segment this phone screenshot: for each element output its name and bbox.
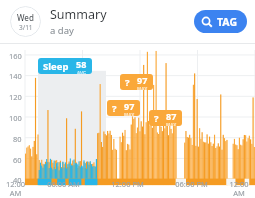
button[interactable]: ? [149, 110, 182, 126]
button[interactable]: ? [107, 100, 140, 116]
staticText: 06:00 AM [47, 179, 80, 189]
staticText: 97 [137, 74, 148, 86]
button[interactable]: ? [120, 74, 153, 90]
staticText: 60 [13, 155, 22, 165]
staticText: Wed [17, 12, 34, 23]
staticText: 12:00 AM [223, 179, 255, 198]
staticText: Sleep [43, 60, 69, 73]
button[interactable]: Sleep [38, 58, 92, 74]
staticText: 06:00 PM [175, 179, 208, 189]
staticText: MAX [137, 86, 148, 90]
staticText: MAX [124, 112, 135, 116]
staticText: MAX [166, 122, 177, 126]
staticText: 140 [9, 71, 22, 81]
button[interactable]: Wed [10, 6, 41, 37]
staticText: 80 [13, 134, 22, 144]
staticText: 97 [124, 100, 135, 112]
staticText: TAG [217, 15, 237, 29]
button[interactable]: Search [194, 10, 247, 33]
staticText: ? [154, 112, 159, 125]
staticText: 40 [13, 175, 22, 185]
staticText: ? [125, 76, 130, 89]
staticText: ? [112, 102, 117, 115]
staticText: 12:00 PM [111, 179, 144, 189]
staticText: 3/11 [19, 23, 33, 32]
staticText: a day [50, 24, 74, 37]
staticText: 12:00 AM [0, 179, 31, 198]
staticText: 58 [76, 58, 87, 70]
staticText: Summary [50, 6, 107, 23]
staticText: 100 [9, 113, 22, 123]
other: Search [201, 16, 213, 28]
staticText: 120 [9, 92, 22, 102]
staticText: 160 [9, 51, 22, 61]
staticText: 87 [166, 110, 177, 122]
staticText: AVG [77, 70, 87, 74]
